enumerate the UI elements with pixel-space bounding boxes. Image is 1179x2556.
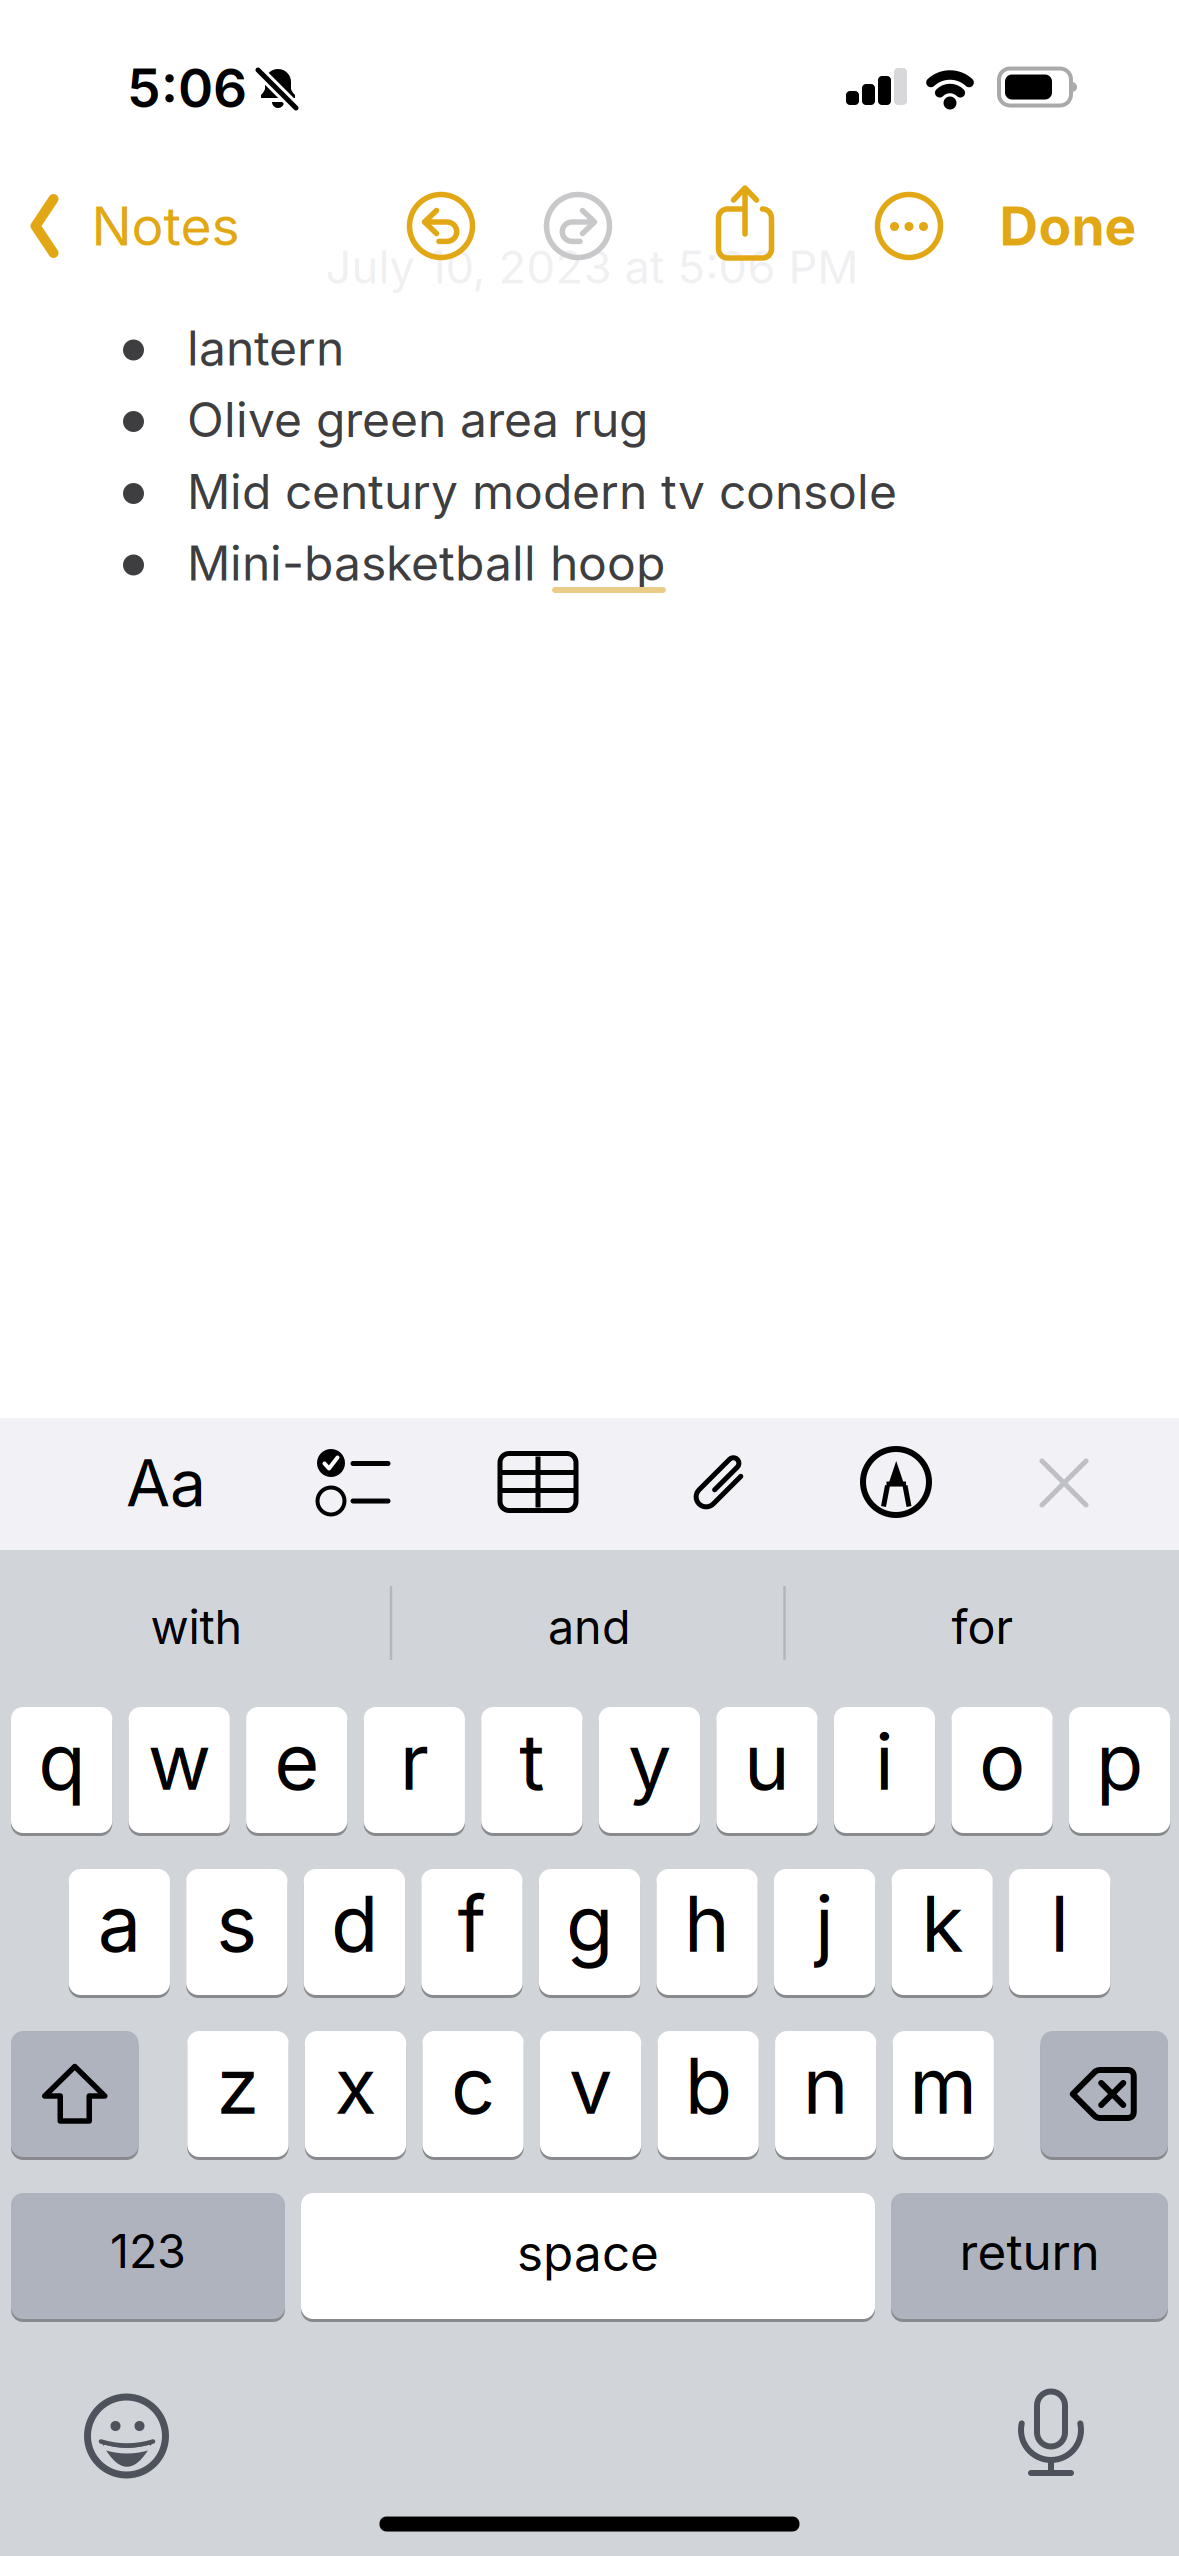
staticText: July 10, 2023 at 5:06 PM <box>325 240 858 294</box>
button[interactable]: d <box>304 1869 405 1999</box>
staticText: c <box>451 2040 495 2131</box>
staticText: lantern <box>187 320 344 376</box>
staticText: Mini-basketball hoop <box>187 535 665 591</box>
staticText: p <box>1096 1716 1143 1807</box>
button[interactable]: n <box>775 2031 876 2161</box>
button[interactable]: Shift <box>11 2031 138 2161</box>
staticText: z <box>216 2040 259 2131</box>
button[interactable]: w <box>128 1707 230 1837</box>
button[interactable]: Redo <box>545 193 611 259</box>
button[interactable]: i <box>834 1707 935 1837</box>
button[interactable]: Table <box>500 1453 576 1510</box>
staticText: w <box>148 1716 211 1807</box>
button[interactable]: q <box>11 1707 112 1837</box>
staticText: return <box>959 2223 1099 2281</box>
staticText: x <box>334 2040 376 2131</box>
staticText: with <box>150 1599 242 1655</box>
button[interactable]: Format <box>126 1445 206 1521</box>
staticText: and <box>548 1599 631 1655</box>
staticText: space <box>517 2224 659 2282</box>
button[interactable]: Emoji <box>84 2394 168 2478</box>
button[interactable]: Dismiss keyboard <box>1038 1457 1090 1509</box>
staticText: o <box>979 1716 1025 1807</box>
button[interactable]: Markup <box>863 1449 929 1515</box>
button[interactable]: c <box>422 2031 524 2161</box>
staticText: Mid century modern tv console <box>187 463 897 520</box>
staticText: f <box>457 1878 486 1969</box>
staticText: e <box>274 1716 319 1807</box>
button[interactable]: v <box>540 2031 641 2161</box>
button[interactable]: z <box>187 2031 289 2161</box>
staticText: j <box>815 1878 834 1969</box>
button[interactable]: f <box>421 1869 523 1999</box>
staticText: d <box>331 1878 378 1969</box>
button[interactable]: Dictation <box>1021 2388 1081 2480</box>
button[interactable]: k <box>891 1869 993 1999</box>
button[interactable]: Notes <box>30 194 239 257</box>
button[interactable]: 123 <box>11 2193 285 2323</box>
button[interactable]: a <box>69 1869 170 1999</box>
button[interactable]: j <box>774 1869 875 1999</box>
button[interactable]: o <box>951 1707 1053 1837</box>
staticText: y <box>628 1716 671 1807</box>
button[interactable]: for <box>797 1562 1167 1692</box>
button[interactable]: s <box>186 1869 287 1999</box>
staticText: s <box>216 1878 257 1969</box>
staticText: q <box>38 1716 85 1807</box>
staticText: u <box>744 1716 790 1807</box>
staticText: Notes <box>91 194 239 257</box>
staticText: Done <box>999 194 1136 257</box>
staticText: Olive green area rug <box>187 391 648 448</box>
button[interactable]: Share <box>716 179 773 263</box>
staticText: h <box>684 1878 730 1969</box>
staticText: Aa <box>126 1445 206 1521</box>
staticText: k <box>921 1878 963 1969</box>
button[interactable]: p <box>1069 1707 1170 1837</box>
button[interactable]: space <box>301 2193 875 2323</box>
staticText: v <box>569 2040 612 2131</box>
button[interactable]: and <box>404 1562 774 1692</box>
button[interactable]: More <box>876 193 942 259</box>
staticText: m <box>909 2040 977 2131</box>
button[interactable]: Undo <box>408 193 474 259</box>
button[interactable]: Done <box>999 194 1136 257</box>
button[interactable]: h <box>656 1869 758 1999</box>
staticText: i <box>875 1716 894 1807</box>
staticText: l <box>1050 1878 1069 1969</box>
button[interactable]: g <box>539 1869 640 1999</box>
staticText: t <box>519 1716 544 1807</box>
button[interactable]: t <box>481 1707 582 1837</box>
button[interactable]: m <box>893 2031 994 2161</box>
button[interactable]: Attach <box>701 1448 741 1516</box>
button[interactable]: u <box>716 1707 818 1837</box>
button[interactable]: Checklist <box>309 1447 391 1517</box>
button[interactable]: with <box>11 1562 381 1692</box>
button[interactable]: b <box>657 2031 759 2161</box>
button[interactable]: Delete <box>1040 2031 1168 2161</box>
staticText: g <box>566 1878 613 1969</box>
staticText: for <box>951 1599 1013 1655</box>
button[interactable]: e <box>246 1707 347 1837</box>
staticText: 123 <box>110 2223 186 2279</box>
button[interactable]: l <box>1009 1869 1110 1999</box>
staticText: b <box>685 2040 732 2131</box>
button[interactable]: x <box>305 2031 406 2161</box>
staticText: 5:06 <box>127 56 247 119</box>
staticText: a <box>98 1878 141 1969</box>
button[interactable]: y <box>599 1707 700 1837</box>
button[interactable]: return <box>891 2193 1168 2323</box>
staticText: n <box>803 2040 849 2131</box>
staticText: r <box>400 1716 429 1807</box>
button[interactable]: r <box>364 1707 465 1837</box>
